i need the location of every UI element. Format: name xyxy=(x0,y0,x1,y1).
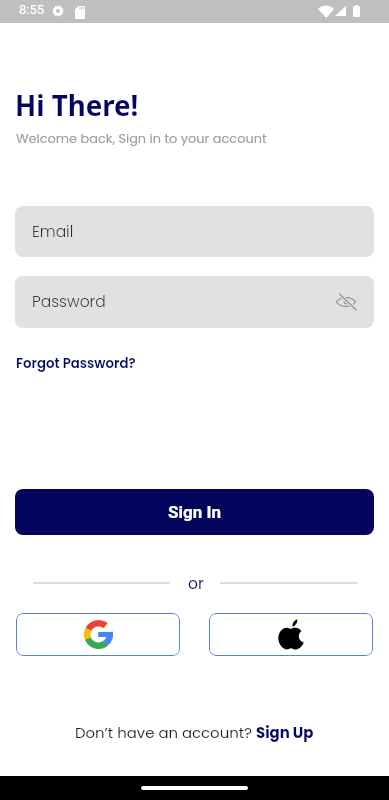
staticText: or xyxy=(188,573,204,593)
button[interactable]: Sign in with Google xyxy=(16,613,180,656)
button[interactable]: Sign in with Apple xyxy=(209,613,373,656)
staticText: Hi There! xyxy=(15,86,139,124)
staticText: Sign In xyxy=(168,502,221,522)
staticText: Don’t have an account? xyxy=(75,722,256,743)
button[interactable]: Sign In xyxy=(15,489,374,535)
button[interactable]: Sign Up xyxy=(256,722,314,743)
staticText: Password xyxy=(32,291,106,313)
button[interactable]: Password xyxy=(15,276,374,328)
button[interactable]: Forgot Password? xyxy=(16,354,136,373)
button[interactable]: Show password xyxy=(336,294,356,310)
staticText: 8:55 xyxy=(19,2,45,17)
button[interactable]: Email xyxy=(15,206,374,257)
staticText: Email xyxy=(32,221,74,243)
staticText: Welcome back, Sign in to your account xyxy=(16,129,267,147)
